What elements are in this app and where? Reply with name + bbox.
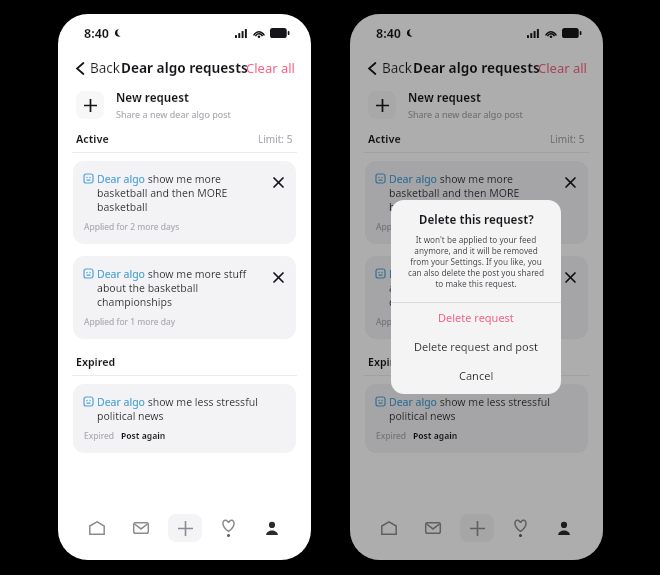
button[interactable]: Delete request: [560, 172, 580, 192]
staticText: Delete request and post: [414, 339, 538, 354]
staticText: Dear algo show me less stressful politic…: [97, 395, 266, 423]
staticText: Delete this request?: [419, 212, 534, 228]
staticText: Applied for 2 more days: [376, 221, 472, 233]
staticText: Clear all: [538, 59, 587, 77]
staticText: Cancel: [459, 368, 494, 383]
button[interactable]: Home: [372, 514, 406, 542]
staticText: New request: [408, 90, 481, 106]
button[interactable]: Delete request: [268, 172, 288, 192]
button[interactable]: Profile: [255, 514, 289, 542]
staticText: It won't be applied to your feed anymore…: [405, 234, 547, 289]
button[interactable]: Back: [72, 56, 125, 80]
staticText: Applied for 1 more day: [376, 316, 468, 328]
staticText: Post again: [121, 430, 166, 442]
staticText: Dear algo requests: [413, 59, 540, 77]
button[interactable]: New request: [350, 84, 603, 126]
staticText: Delete request: [438, 310, 514, 325]
staticText: Expired: [368, 355, 408, 369]
staticText: Back: [90, 59, 121, 77]
staticText: Dear algo show me more stuff about the b…: [389, 267, 558, 309]
button[interactable]: Profile: [547, 514, 581, 542]
button[interactable]: Activity: [503, 514, 537, 542]
staticText: Limit: 5: [550, 132, 585, 146]
staticText: Active: [76, 132, 109, 146]
button[interactable]: Clear all: [242, 56, 299, 80]
staticText: Expired: [84, 430, 115, 442]
staticText: 8:40: [84, 25, 109, 42]
button[interactable]: Back: [364, 56, 417, 80]
button[interactable]: Delete request: [391, 303, 561, 332]
staticText: Dear algo show me more basketball and th…: [97, 172, 266, 214]
button[interactable]: Clear all: [534, 56, 591, 80]
button[interactable]: Dear algo show me more stuff about the b…: [365, 256, 588, 339]
button[interactable]: Dear algo show me less stressful politic…: [365, 384, 588, 453]
button[interactable]: Post again: [121, 430, 166, 442]
staticText: Applied for 2 more days: [84, 221, 180, 233]
staticText: Dear algo show me less stressful politic…: [389, 395, 558, 423]
button[interactable]: Dear algo show me less stressful politic…: [73, 384, 296, 453]
staticText: Post again: [413, 430, 458, 442]
button[interactable]: Messages: [124, 514, 158, 542]
button[interactable]: Dear algo show me more stuff about the b…: [73, 256, 296, 339]
staticText: New request: [116, 90, 189, 106]
staticText: Dear algo show me more stuff about the b…: [97, 267, 266, 309]
staticText: Applied for 1 more day: [84, 316, 176, 328]
button[interactable]: Post again: [413, 430, 458, 442]
staticText: Share a new dear algo post: [116, 108, 231, 120]
button[interactable]: Create: [460, 514, 494, 542]
button[interactable]: Delete request: [268, 267, 288, 287]
staticText: Active: [368, 132, 401, 146]
button[interactable]: Dear algo show me more basketball and th…: [73, 161, 296, 244]
button[interactable]: New request: [58, 84, 311, 126]
staticText: Back: [382, 59, 413, 77]
button[interactable]: Create: [168, 514, 202, 542]
staticText: Dear algo show me more basketball and th…: [389, 172, 558, 214]
button[interactable]: Dear algo show me more basketball and th…: [365, 161, 588, 244]
button[interactable]: Delete request: [560, 267, 580, 287]
staticText: Expired: [76, 355, 116, 369]
button[interactable]: Home: [80, 514, 114, 542]
staticText: Limit: 5: [258, 132, 293, 146]
button[interactable]: Cancel: [391, 361, 561, 390]
staticText: Expired: [376, 430, 407, 442]
button[interactable]: Delete request and post: [391, 332, 561, 361]
staticText: Dear algo requests: [121, 59, 248, 77]
staticText: Share a new dear algo post: [408, 108, 523, 120]
button[interactable]: Messages: [416, 514, 450, 542]
staticText: Clear all: [246, 59, 295, 77]
staticText: 8:40: [376, 25, 401, 42]
button[interactable]: Activity: [211, 514, 245, 542]
